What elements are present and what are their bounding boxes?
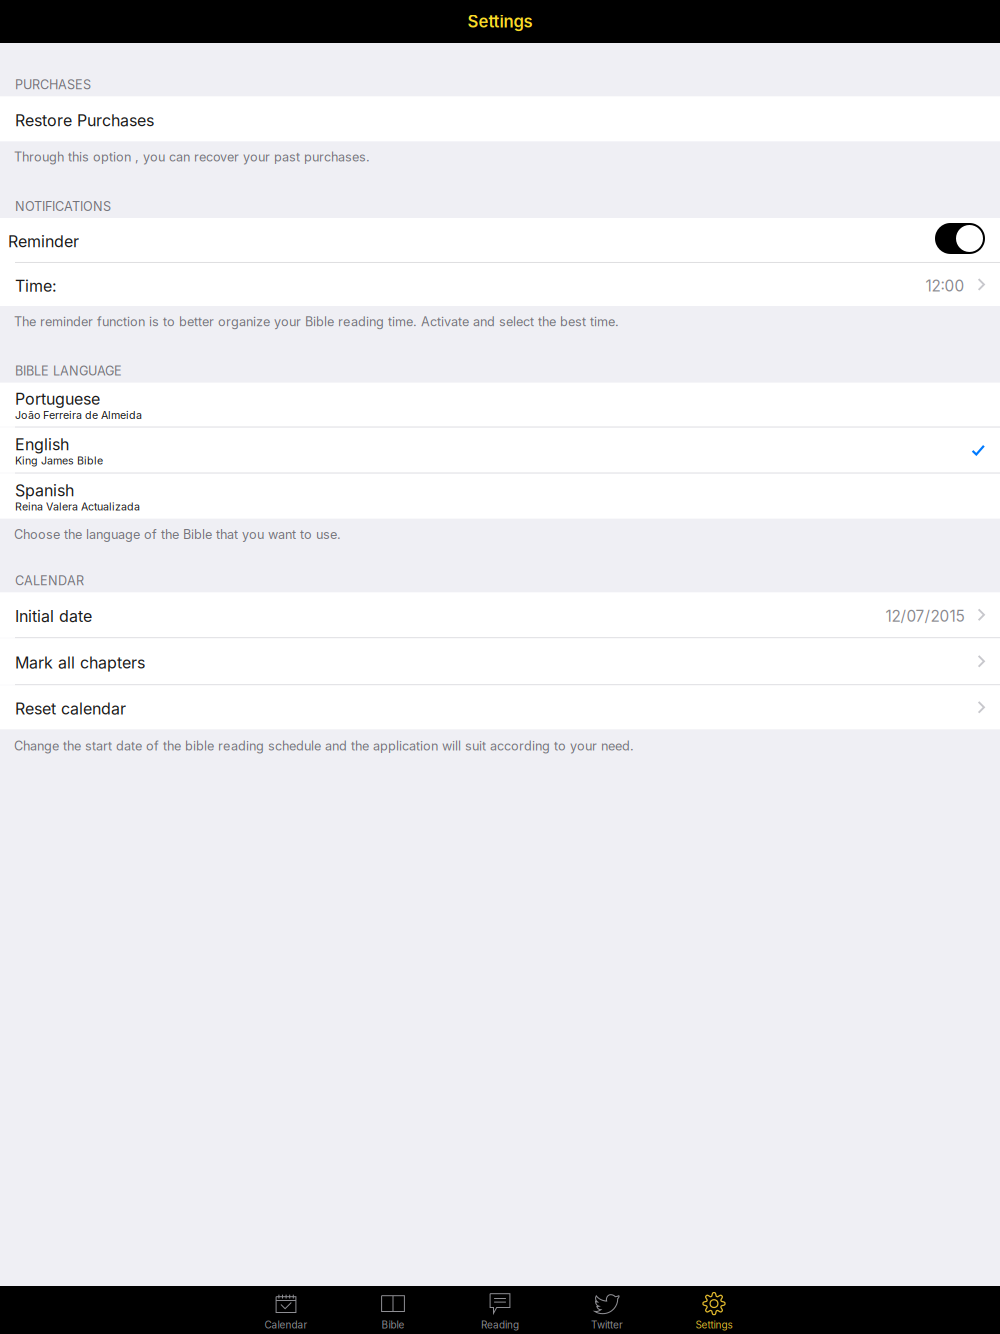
staticText: Change the start date of the bible readi… xyxy=(14,738,634,754)
staticText: Choose the language of the Bible that yo… xyxy=(14,527,341,542)
staticText: Reminder xyxy=(8,232,79,251)
button[interactable]: Initial date xyxy=(0,592,1000,637)
button[interactable]: Reading xyxy=(446,1286,553,1334)
staticText: João Ferreira de Almeida xyxy=(15,409,142,421)
button[interactable]: Portuguese xyxy=(0,383,1000,427)
staticText: Twitter xyxy=(591,1319,623,1331)
button[interactable]: Reminder xyxy=(0,218,1000,262)
button[interactable]: Spanish xyxy=(0,474,1000,519)
staticText: Initial date xyxy=(15,607,92,626)
staticText: Time: xyxy=(15,276,57,296)
button[interactable]: English xyxy=(0,428,1000,473)
staticText: Portuguese xyxy=(15,389,100,409)
staticText: NOTIFICATIONS xyxy=(15,199,111,214)
staticText: Spanish xyxy=(15,481,74,500)
staticText: CALENDAR xyxy=(15,573,84,588)
button[interactable]: Calendar xyxy=(232,1286,339,1334)
button[interactable]: Mark all chapters xyxy=(0,638,1000,684)
button[interactable]: Bible xyxy=(339,1286,446,1334)
staticText: Reina Valera Actualizada xyxy=(15,500,140,513)
staticText: 12/07/2015 xyxy=(886,607,965,626)
staticText: Through this option , you can recover yo… xyxy=(14,149,370,165)
staticText: Bible xyxy=(381,1319,404,1331)
staticText: Settings xyxy=(467,11,532,32)
button[interactable]: Restore Purchases xyxy=(0,96,1000,141)
staticText: Reset calendar xyxy=(15,699,126,718)
staticText: English xyxy=(15,435,69,454)
button[interactable]: Twitter xyxy=(553,1286,660,1334)
button[interactable]: Settings xyxy=(660,1286,767,1334)
button[interactable]: Reset calendar xyxy=(0,685,1000,729)
staticText: King James Bible xyxy=(15,454,103,467)
staticText: PURCHASES xyxy=(15,77,91,92)
staticText: Reading xyxy=(481,1319,519,1331)
staticText: Restore Purchases xyxy=(15,111,154,130)
staticText: 12:00 xyxy=(926,277,965,295)
staticText: Calendar xyxy=(264,1319,307,1331)
staticText: Mark all chapters xyxy=(15,653,145,672)
staticText: BIBLE LANGUAGE xyxy=(15,363,122,379)
staticText: The reminder function is to better organ… xyxy=(14,314,619,329)
button[interactable]: Time: xyxy=(0,263,1000,306)
staticText: Settings xyxy=(695,1319,732,1331)
